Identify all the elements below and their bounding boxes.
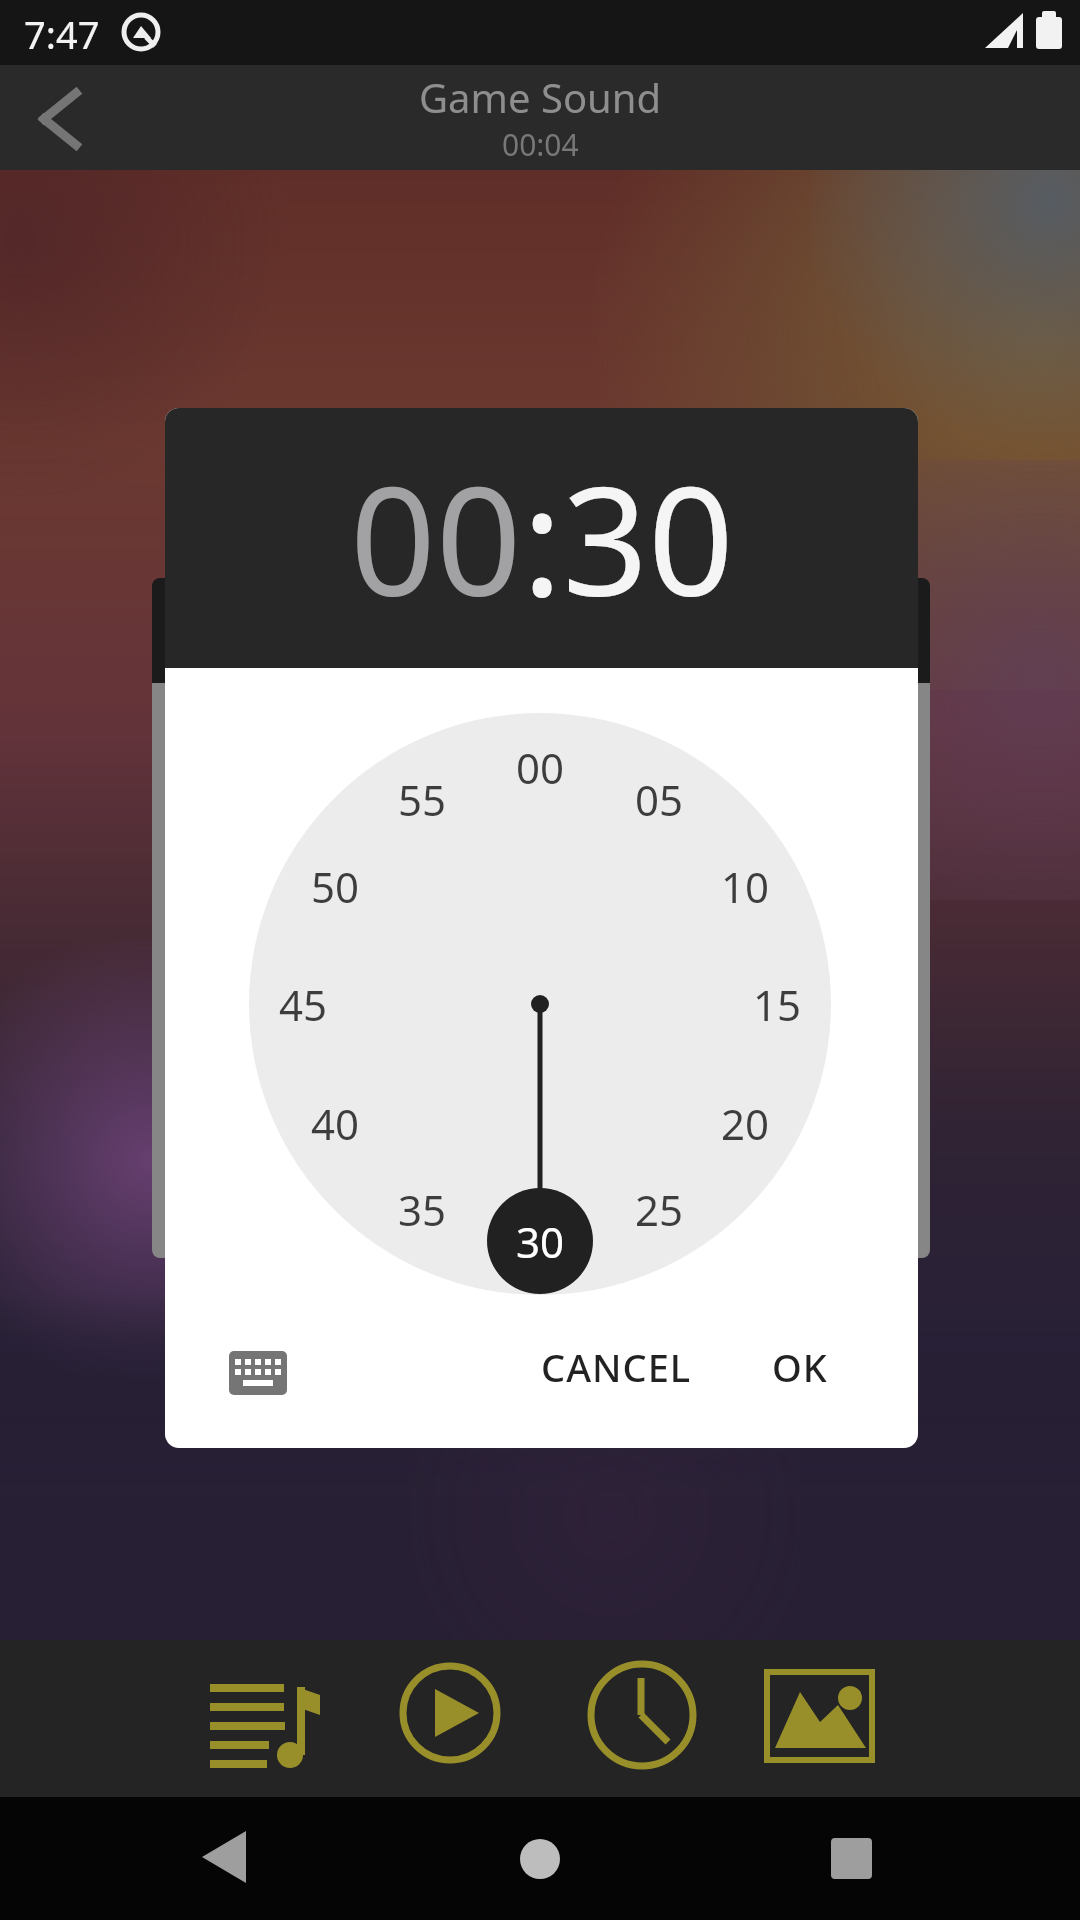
staticText: Game Sound — [419, 70, 662, 124]
staticText: 10 — [721, 858, 770, 915]
button[interactable] — [185, 1660, 340, 1780]
staticText: 30 — [516, 1213, 565, 1270]
staticText: 55 — [398, 771, 447, 828]
staticText: :30 — [522, 436, 734, 640]
button[interactable] — [20, 80, 100, 158]
button[interactable] — [213, 1328, 303, 1418]
staticText: 40 — [311, 1095, 360, 1152]
button[interactable] — [390, 1660, 510, 1780]
staticText: 25 — [635, 1181, 684, 1238]
staticText: 00 — [516, 739, 565, 796]
staticText: 00 — [350, 436, 522, 640]
staticText: 50 — [311, 858, 360, 915]
button[interactable] — [806, 1817, 896, 1901]
staticText: 35 — [398, 1181, 447, 1238]
button[interactable] — [582, 1660, 702, 1780]
button[interactable] — [495, 1817, 585, 1901]
staticText: CANCEL — [541, 1341, 692, 1393]
button[interactable]: OK — [740, 1322, 860, 1412]
staticText: 45 — [279, 976, 328, 1033]
staticText: OK — [772, 1341, 828, 1393]
button[interactable]: 30 — [165, 408, 275, 518]
staticText: 7:47 — [24, 8, 100, 60]
button[interactable]: CANCEL — [526, 1322, 706, 1412]
staticText: 05 — [635, 771, 684, 828]
staticText: 20 — [721, 1095, 770, 1152]
staticText: 15 — [753, 976, 802, 1033]
button[interactable] — [180, 1817, 270, 1901]
button[interactable] — [755, 1660, 885, 1780]
staticText: 00:04 — [502, 124, 579, 165]
